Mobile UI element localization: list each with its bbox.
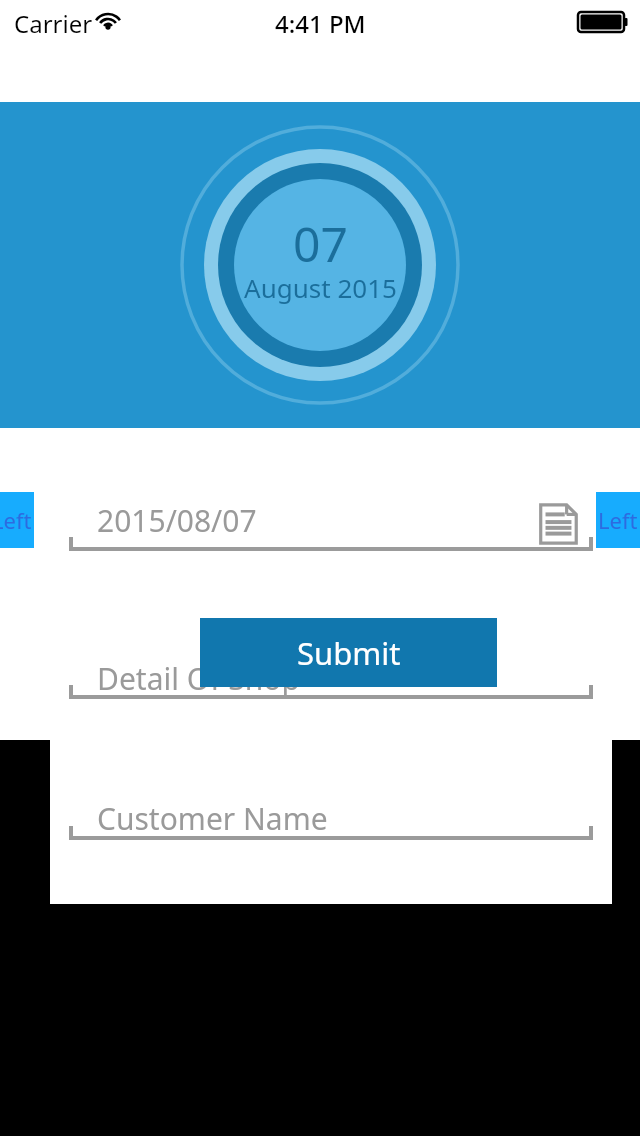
button[interactable]: Left (596, 492, 640, 548)
staticText: Carrier (14, 7, 93, 40)
staticText: 4:41 PM (275, 7, 366, 40)
staticText: 07 (293, 211, 348, 276)
button[interactable]: Open document (534, 500, 582, 548)
staticText: Customer Name (97, 798, 328, 839)
button[interactable]: Submit (200, 618, 497, 687)
button[interactable]: 07 (180, 125, 460, 405)
staticText: Left (0, 505, 32, 535)
button[interactable]: 2015/08/07 (69, 492, 593, 559)
button[interactable]: Detail Of Shop (69, 650, 593, 707)
staticText: Detail Of Shop (97, 658, 300, 699)
button[interactable]: Left (0, 492, 34, 548)
staticText: 2015/08/07 (97, 500, 257, 541)
button[interactable]: Customer Name (69, 790, 593, 848)
staticText: August 2015 (244, 270, 397, 305)
staticText: Left (598, 505, 638, 535)
staticText: Submit (297, 632, 401, 674)
